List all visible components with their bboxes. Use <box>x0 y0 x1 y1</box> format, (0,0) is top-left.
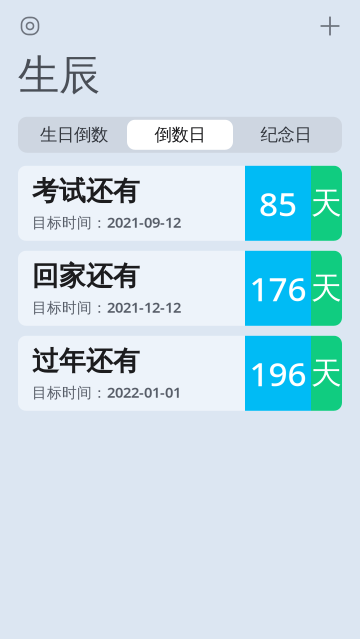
button[interactable]: 倒数日 <box>127 120 233 150</box>
staticText: 过年还有 <box>32 345 140 377</box>
staticText: 196 <box>249 351 306 395</box>
button[interactable]: 考试还有 <box>18 166 342 241</box>
staticText: 回家还有 <box>32 260 140 292</box>
staticText: 生辰 <box>18 50 100 101</box>
staticText: 天 <box>311 184 342 222</box>
staticText: 倒数日 <box>154 124 205 145</box>
staticText: 176 <box>249 266 306 310</box>
staticText: 目标时间：2022-01-01 <box>32 382 181 402</box>
button[interactable]: Add <box>318 14 342 38</box>
staticText: 目标时间：2021-12-12 <box>32 297 181 317</box>
staticText: 考试还有 <box>32 175 140 207</box>
staticText: 纪念日 <box>260 124 311 145</box>
button[interactable]: 纪念日 <box>233 120 339 150</box>
staticText: 天 <box>311 269 342 307</box>
staticText: 生日倒数 <box>40 124 108 145</box>
staticText: 85 <box>259 181 297 225</box>
staticText: 目标时间：2021-09-12 <box>32 212 181 232</box>
button[interactable]: 回家还有 <box>18 251 342 326</box>
button[interactable]: 过年还有 <box>18 336 342 411</box>
button[interactable]: 生日倒数 <box>21 120 127 150</box>
staticText: 天 <box>311 354 342 392</box>
button[interactable]: Settings <box>18 14 42 38</box>
